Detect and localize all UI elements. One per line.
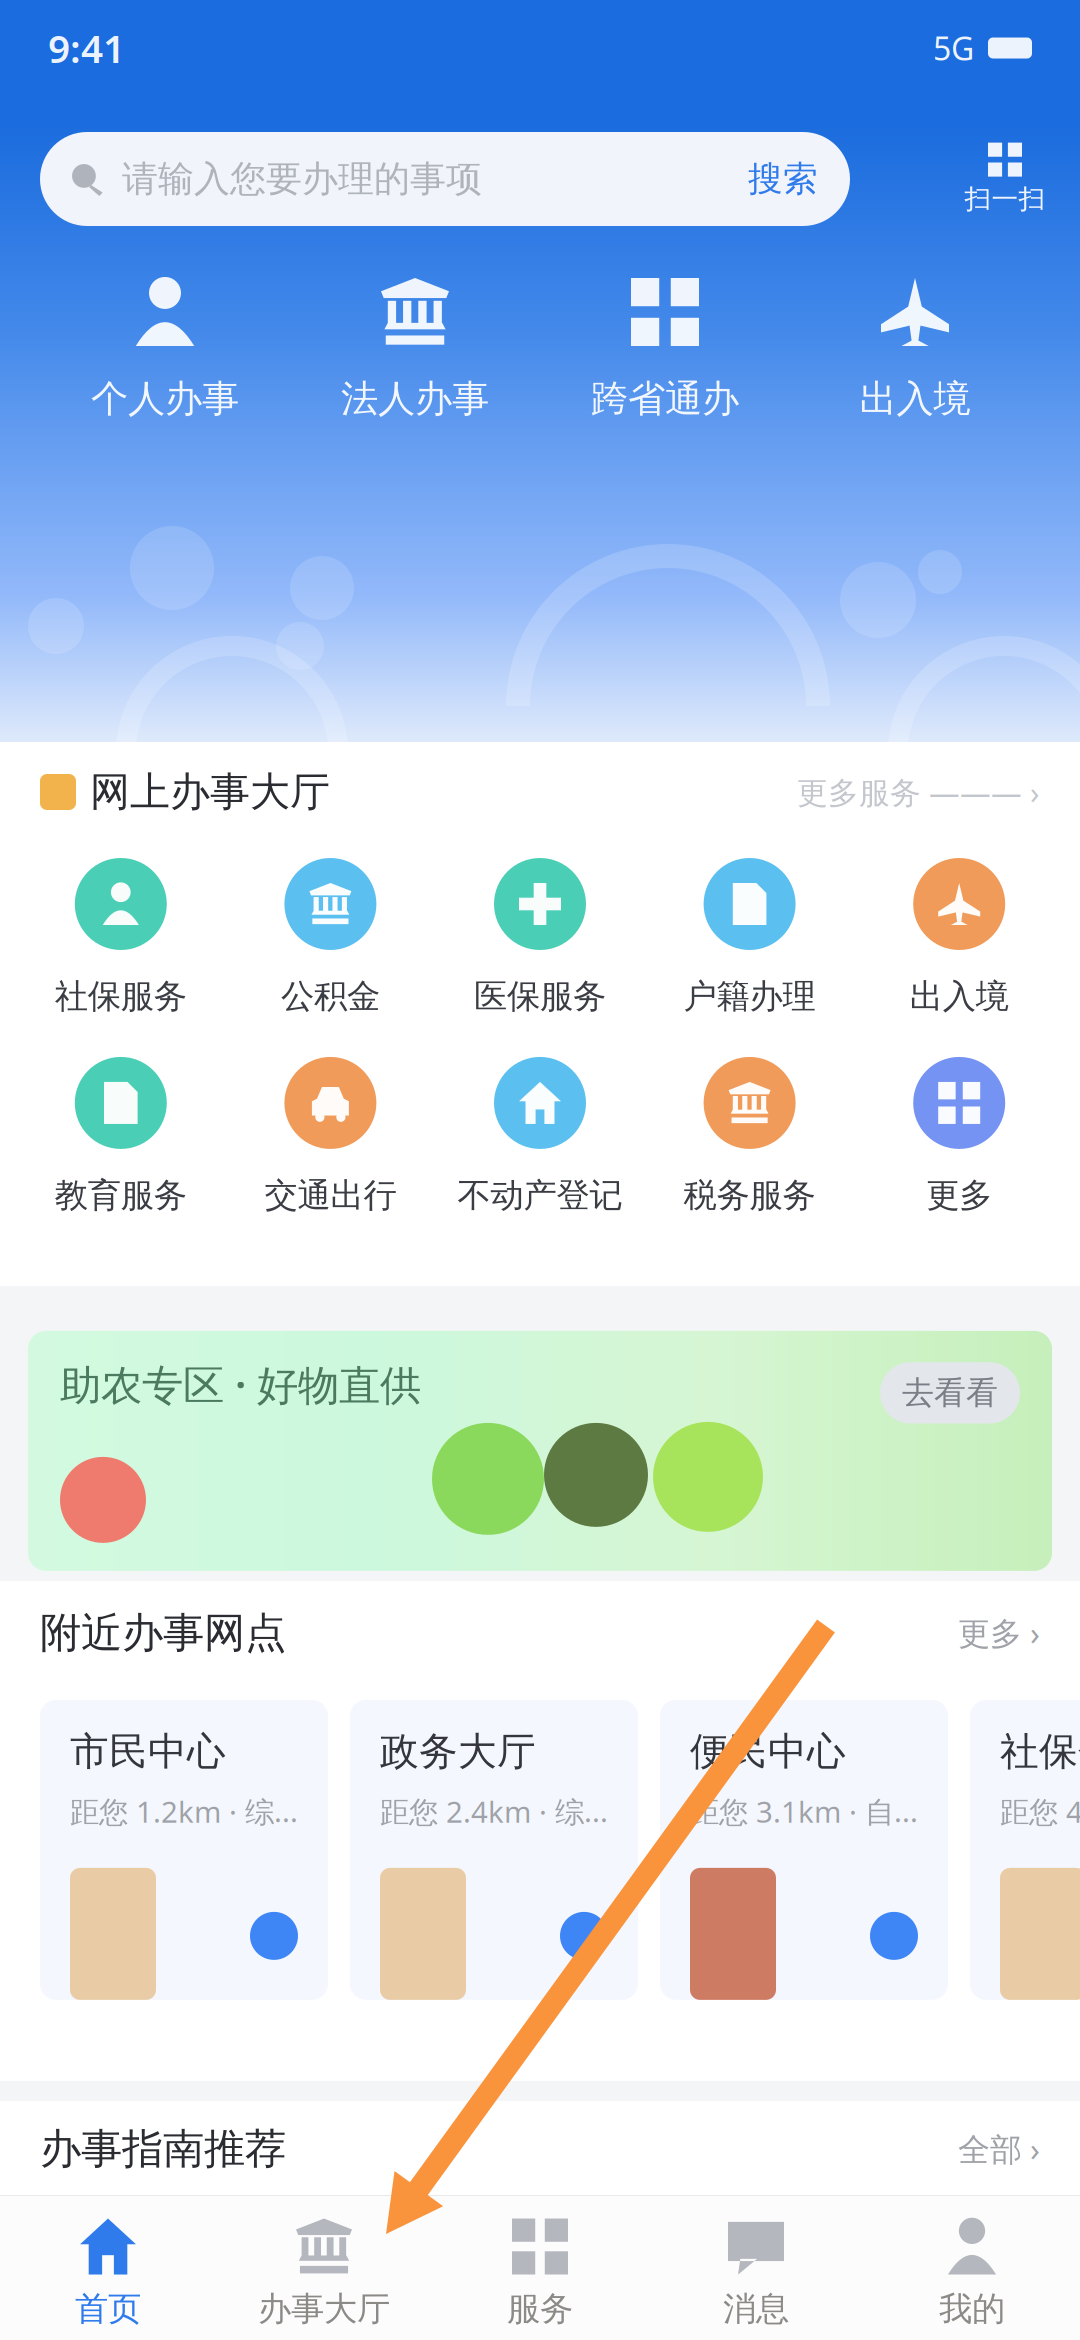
staticText: 首页 xyxy=(75,2288,141,2329)
button[interactable]: 全部 › xyxy=(958,2128,1040,2170)
staticText: 个人办事 xyxy=(91,376,239,422)
staticText: 扫一扫 xyxy=(964,183,1045,215)
staticText: 请输入您要办理的事项 xyxy=(122,157,482,201)
button[interactable]: 医保服务 xyxy=(435,858,645,1017)
staticText: 出入境 xyxy=(910,976,1009,1017)
button[interactable]: 消息 xyxy=(648,2206,864,2329)
staticText: 公积金 xyxy=(281,976,380,1017)
button[interactable]: 不动产登记 xyxy=(435,1057,645,1216)
staticText: 不动产登记 xyxy=(457,1175,622,1216)
button[interactable] xyxy=(721,2197,1039,2340)
staticText: 出入境 xyxy=(859,376,970,422)
staticText: 市民中心 xyxy=(70,1728,226,1775)
staticText: 更多服务 ——— › xyxy=(797,772,1040,812)
staticText: 税务服务 xyxy=(684,1175,816,1216)
staticText: 社保服务 xyxy=(55,976,187,1017)
staticText: 办事大厅 xyxy=(258,2288,390,2329)
button[interactable]: 跨省通办 xyxy=(540,278,790,422)
button[interactable]: 助农专区 · 好物直供 xyxy=(28,1331,1052,1571)
button[interactable]: 更多 xyxy=(854,1057,1064,1216)
staticText: 办事指南推荐 xyxy=(40,2123,286,2174)
button[interactable]: 公积金 xyxy=(226,858,435,1017)
button[interactable]: 税务服务 xyxy=(645,1057,854,1216)
button[interactable]: 出入境 xyxy=(854,858,1064,1017)
button[interactable]: 交通出行 xyxy=(226,1057,435,1216)
button[interactable] xyxy=(41,2197,359,2340)
button[interactable]: 社保服务 xyxy=(16,858,226,1017)
button[interactable]: 政务大厅 xyxy=(350,1700,638,2000)
button[interactable]: 更多 › xyxy=(958,1612,1040,1654)
button[interactable]: 出入境 xyxy=(790,278,1040,422)
button[interactable]: 扫一扫 xyxy=(930,143,1080,215)
staticText: 服务 xyxy=(507,2288,573,2329)
staticText: 全部 › xyxy=(958,2128,1040,2170)
staticText: 更多 › xyxy=(958,1612,1040,1654)
staticText: 距您 1.2km · 综合办事大厅 xyxy=(70,1791,298,1831)
staticText: 距您 3.1km · 自助服务区 xyxy=(690,1791,918,1831)
staticText: 网上办事大厅 xyxy=(90,767,330,816)
staticText: 更多 xyxy=(926,1175,992,1216)
staticText: 5G xyxy=(933,27,974,69)
staticText: 医保服务 xyxy=(474,976,606,1017)
staticText: 9:41 xyxy=(48,22,125,74)
button[interactable]: 更多服务 ——— › xyxy=(797,772,1040,812)
staticText: 距您 4.6km · 社保业务 xyxy=(1000,1791,1080,1831)
button[interactable]: 市民中心 xyxy=(40,1700,328,2000)
button[interactable]: 办事大厅 xyxy=(216,2206,432,2329)
button[interactable]: 教育服务 xyxy=(16,1057,226,1216)
staticText: 法人办事 xyxy=(341,376,489,422)
staticText: 助农专区 · 好物直供 xyxy=(60,1357,421,1412)
staticText: 交通出行 xyxy=(264,1175,396,1216)
staticText: 户籍办理 xyxy=(684,976,816,1017)
staticText: 教育服务 xyxy=(55,1175,187,1216)
button[interactable]: 户籍办理 xyxy=(645,858,854,1017)
button[interactable]: 法人办事 xyxy=(290,278,540,422)
button[interactable]: 便民中心 xyxy=(660,1700,948,2000)
staticText: 附近办事网点 xyxy=(40,1607,286,1658)
button[interactable]: 服务 xyxy=(432,2206,648,2329)
staticText: 去看看 xyxy=(902,1373,998,1412)
button[interactable]: 我的 xyxy=(864,2206,1080,2329)
staticText: 搜索 xyxy=(748,158,818,200)
staticText: 便民中心 xyxy=(690,1728,846,1775)
staticText: 距您 2.4km · 综合窗口 xyxy=(380,1791,608,1831)
staticText: 社保分局 xyxy=(1000,1728,1080,1775)
staticText: 我的 xyxy=(939,2288,1005,2329)
button[interactable]: 社保分局 xyxy=(970,1700,1080,2000)
button[interactable] xyxy=(381,2197,699,2340)
button[interactable]: 首页 xyxy=(0,2206,216,2329)
staticText: 跨省通办 xyxy=(591,376,739,422)
staticText: 消息 xyxy=(723,2288,789,2329)
button[interactable]: 个人办事 xyxy=(40,278,290,422)
staticText: 政务大厅 xyxy=(380,1728,536,1775)
